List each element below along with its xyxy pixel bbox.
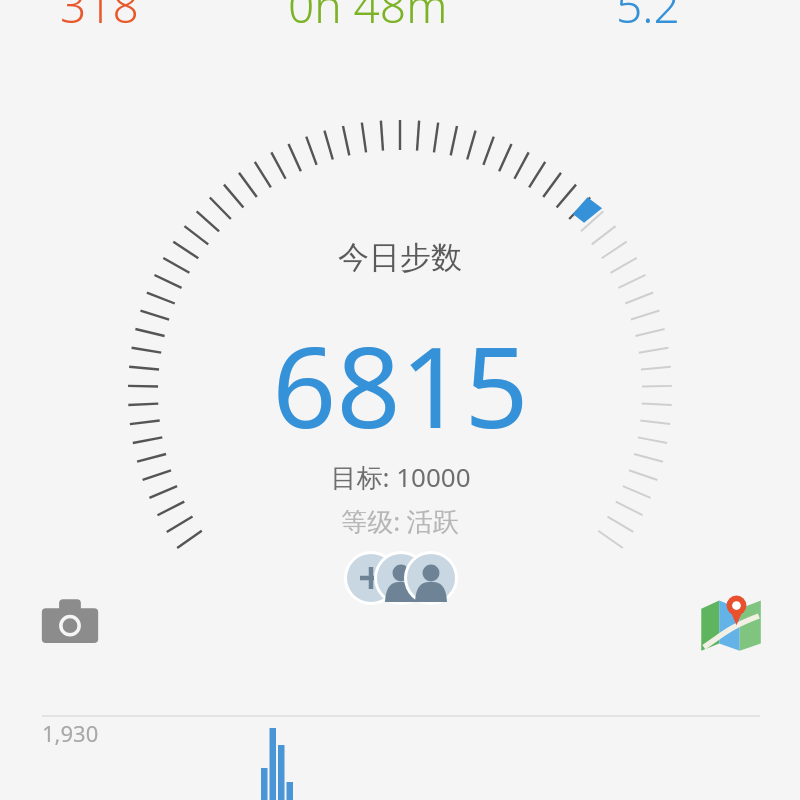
button[interactable]: Camera [38, 596, 102, 652]
button[interactable]: 1,930 [42, 718, 99, 748]
button[interactable]: 5.2 [616, 0, 680, 37]
button[interactable]: 318 [60, 0, 139, 37]
staticText: 目标: 10000 [330, 459, 471, 495]
staticText: 5.2 [616, 0, 680, 37]
staticText: 318 [60, 0, 139, 37]
staticText: 6815 [272, 308, 529, 461]
button[interactable]: Friends [345, 553, 457, 603]
staticText: 今日步数 [338, 238, 462, 277]
staticText: 0h 48m [288, 0, 448, 37]
button[interactable]: 0h 48m [288, 0, 448, 37]
staticText: 等级: 活跃 [341, 503, 459, 539]
button[interactable]: Maps [700, 592, 764, 652]
staticText: 1,930 [42, 718, 99, 748]
